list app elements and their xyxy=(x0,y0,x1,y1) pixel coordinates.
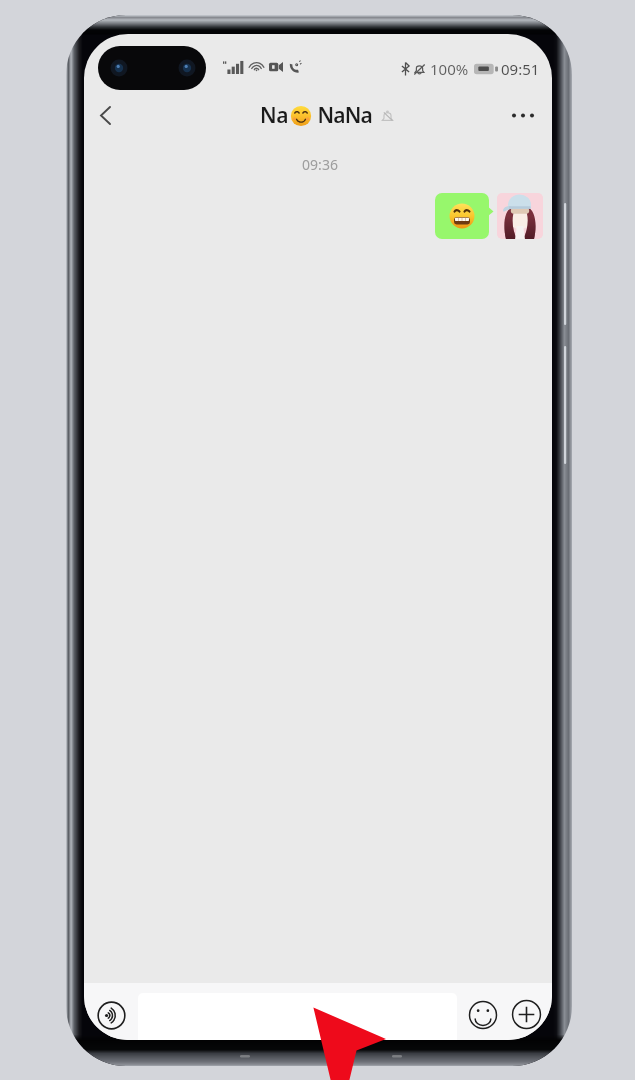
button[interactable]: Message input xyxy=(138,993,457,1040)
button[interactable]: Voice input xyxy=(96,1000,126,1030)
staticText: 09:36 xyxy=(86,155,552,174)
button[interactable]: More xyxy=(511,999,542,1030)
staticText: NaNa xyxy=(313,101,372,130)
staticText: 09:51 xyxy=(501,59,540,79)
staticText: Na xyxy=(260,101,289,130)
button[interactable]: Sticker message xyxy=(435,193,493,239)
button[interactable]: Avatar xyxy=(497,193,543,239)
button[interactable]: Emoji xyxy=(467,999,498,1030)
button[interactable]: Back xyxy=(88,98,122,132)
staticText: 100% xyxy=(430,59,469,79)
button[interactable]: More options xyxy=(493,96,552,134)
